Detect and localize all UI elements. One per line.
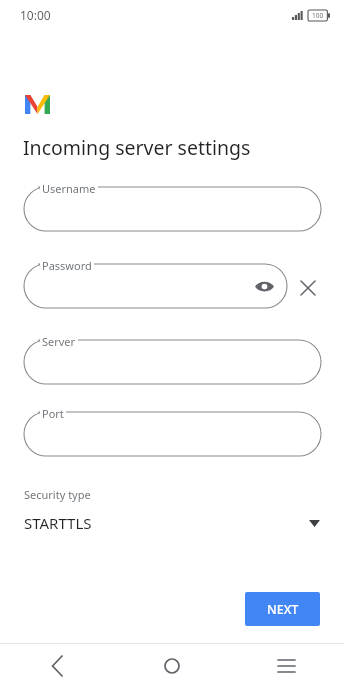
button[interactable]: Home [114, 643, 229, 688]
button[interactable]: Password [24, 264, 287, 308]
staticText: Username [42, 181, 96, 196]
staticText: Server [42, 334, 76, 349]
button[interactable]: Back [0, 643, 114, 688]
button[interactable]: Username [24, 187, 321, 231]
staticText: Port [42, 406, 64, 421]
staticText: Security type [24, 487, 91, 502]
staticText: Password [42, 258, 92, 273]
staticText: 10:00 [20, 7, 51, 23]
button[interactable]: NEXT [245, 592, 320, 626]
button[interactable]: Clear [295, 275, 321, 301]
staticText: Incoming server settings [23, 134, 251, 161]
button[interactable]: Show password [249, 271, 279, 301]
staticText: 100 [312, 11, 324, 20]
button[interactable]: Recents [229, 643, 344, 688]
staticText: NEXT [267, 601, 299, 618]
button[interactable]: Security type [0, 485, 344, 535]
button[interactable]: Port [24, 412, 321, 456]
staticText: STARTTLS [24, 513, 92, 533]
button[interactable]: Server [24, 340, 321, 384]
